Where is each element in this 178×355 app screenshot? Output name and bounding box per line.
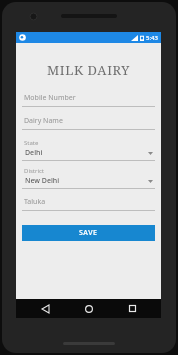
staticText: Dairy Name — [24, 116, 63, 126]
staticText: MILK DAIRY — [22, 61, 155, 79]
staticText: New Delhi — [25, 176, 60, 186]
button[interactable]: Back — [30, 299, 60, 318]
staticText: SAVE — [79, 228, 98, 238]
button[interactable]: SAVE — [22, 225, 155, 241]
staticText: District — [24, 167, 45, 175]
button[interactable]: Dairy Name — [22, 116, 155, 130]
button[interactable]: Recent apps — [117, 299, 147, 318]
staticText: Mobile Number — [24, 93, 76, 103]
button[interactable]: State dropdown — [22, 139, 155, 161]
button[interactable]: Home — [74, 299, 104, 318]
staticText: State — [24, 139, 39, 147]
staticText: 5:43 — [146, 34, 158, 42]
button[interactable]: Mobile Number — [22, 93, 155, 107]
button[interactable]: District dropdown — [22, 167, 155, 189]
staticText: Delhi — [25, 148, 43, 158]
staticText: Taluka — [24, 197, 46, 207]
button[interactable]: Taluka — [22, 197, 155, 211]
